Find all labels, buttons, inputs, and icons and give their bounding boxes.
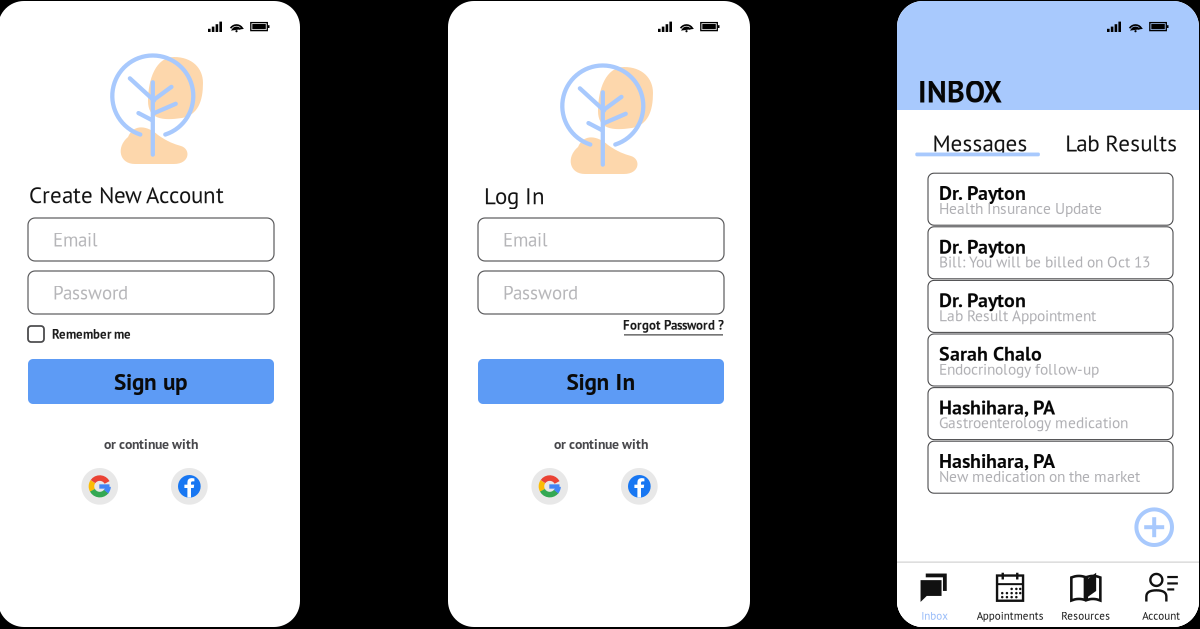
staticText: New medication on the market — [939, 466, 1140, 486]
button[interactable]: Sign In — [478, 359, 724, 404]
staticText: Sign up — [114, 366, 188, 396]
button[interactable]: Lab Results — [1065, 126, 1177, 158]
button[interactable]: Resources — [1048, 571, 1123, 627]
staticText: INBOX — [918, 72, 1002, 111]
button[interactable]: Dr. Payton — [928, 173, 1173, 225]
button[interactable]: Continue with Facebook — [171, 468, 208, 505]
staticText: Endocrinology follow-up — [939, 359, 1099, 379]
staticText: Hashihara, PA — [939, 448, 1055, 474]
staticText: Resources — [1061, 608, 1110, 623]
button[interactable]: Continue with Google — [81, 468, 118, 505]
staticText: Bill: You will be billed on Oct 13 — [939, 252, 1150, 272]
button[interactable]: Dr. Payton — [928, 227, 1173, 279]
staticText: Forgot Password ? — [623, 317, 724, 333]
staticText: Gastroenterology medication — [939, 413, 1128, 433]
staticText: Password — [503, 280, 578, 305]
staticText: Appointments — [977, 608, 1044, 623]
button[interactable]: Continue with Google — [531, 468, 568, 505]
staticText: Lab Results — [1065, 128, 1177, 158]
staticText: Email — [503, 227, 548, 252]
button[interactable]: Continue with Facebook — [621, 468, 658, 505]
button[interactable]: Hashihara, PA — [928, 388, 1173, 440]
staticText: Dr. Payton — [939, 180, 1026, 206]
button[interactable]: Hashihara, PA — [928, 441, 1173, 493]
staticText: Account — [1142, 608, 1180, 623]
button[interactable]: Compose message — [1134, 507, 1174, 547]
staticText: Sarah Chalo — [939, 340, 1042, 366]
staticText: Dr. Payton — [939, 287, 1026, 313]
staticText: Messages — [933, 128, 1028, 158]
button[interactable]: Forgot Password ? — [478, 318, 724, 334]
button[interactable]: Account — [1123, 571, 1199, 627]
staticText: Lab Result Appointment — [939, 305, 1096, 325]
button[interactable]: Inbox — [897, 571, 972, 627]
staticText: Inbox — [921, 608, 948, 623]
button[interactable]: Messages — [915, 126, 1042, 158]
button[interactable]: Sarah Chalo — [928, 334, 1173, 386]
staticText: or continue with — [104, 435, 198, 453]
staticText: Log In — [484, 181, 545, 211]
staticText: Email — [53, 227, 98, 252]
staticText: Sign In — [566, 366, 635, 396]
staticText: Health Insurance Update — [939, 198, 1102, 218]
staticText: Remember me — [52, 326, 131, 342]
staticText: Dr. Payton — [939, 233, 1026, 259]
button[interactable]: Sign up — [28, 359, 274, 404]
staticText: or continue with — [554, 435, 648, 453]
staticText: Password — [53, 280, 128, 305]
staticText: Create New Account — [29, 180, 224, 210]
button[interactable]: Dr. Payton — [928, 280, 1173, 332]
staticText: Hashihara, PA — [939, 394, 1055, 420]
button[interactable]: Remember me — [28, 325, 274, 343]
button[interactable]: Appointments — [972, 571, 1048, 627]
